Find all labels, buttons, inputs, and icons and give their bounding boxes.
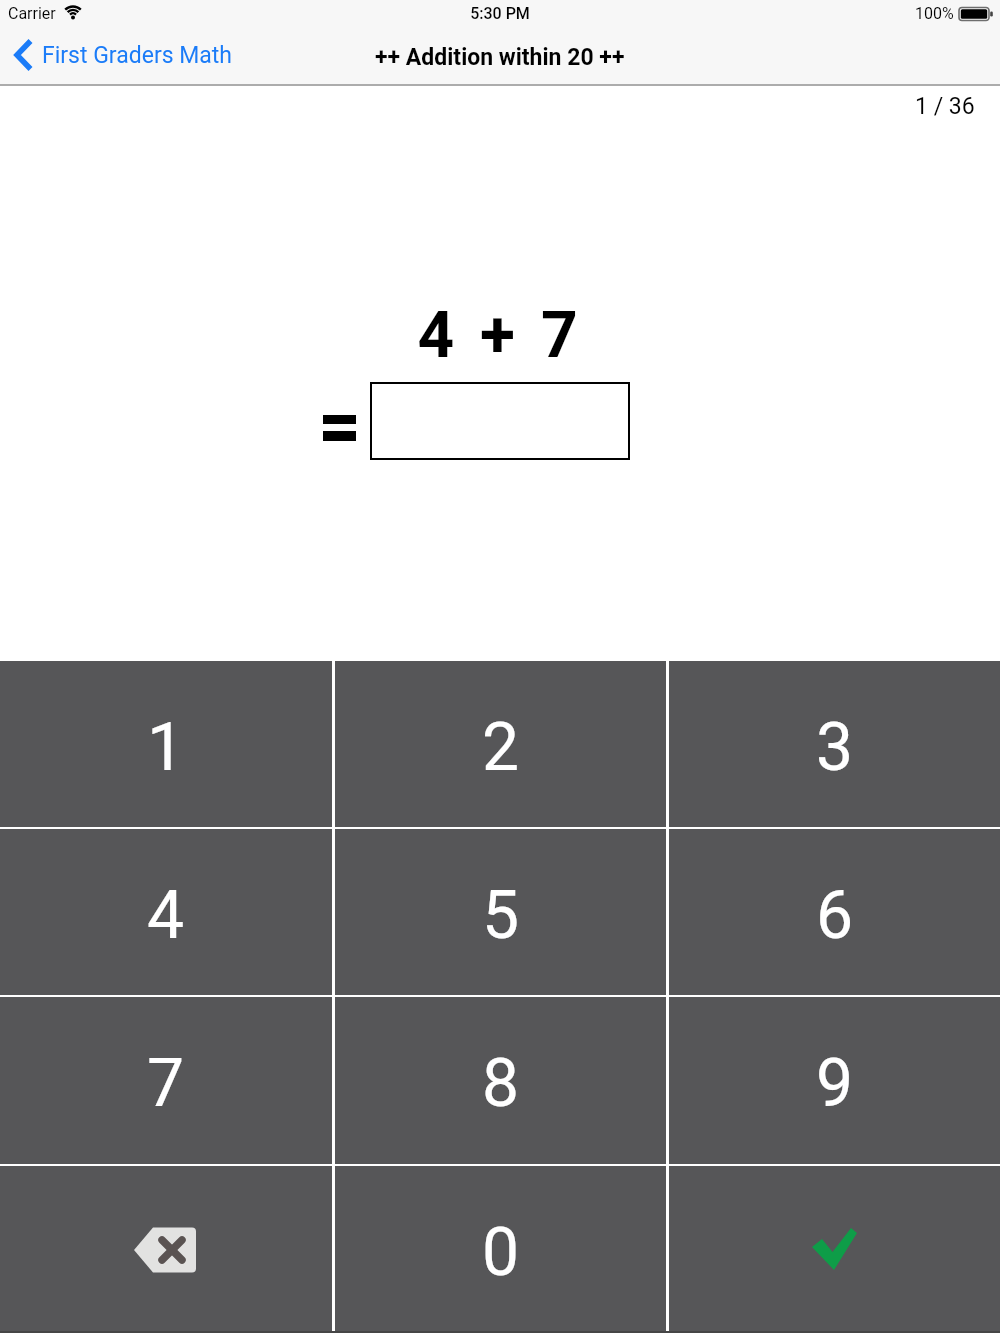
button[interactable]: 0 bbox=[335, 1166, 666, 1333]
button[interactable] bbox=[370, 382, 630, 460]
button[interactable]: 4 bbox=[0, 829, 332, 995]
staticText: Carrier bbox=[8, 4, 56, 23]
staticText: 9 bbox=[816, 1045, 854, 1122]
staticText: 4 + 7 bbox=[0, 298, 1000, 373]
button[interactable]: 5 bbox=[335, 829, 666, 995]
staticText: 8 bbox=[482, 1045, 520, 1122]
staticText: ++ Addition within 20 ++ bbox=[375, 44, 625, 71]
button[interactable]: 9 bbox=[669, 997, 1000, 1164]
staticText: 5:30 PM bbox=[0, 4, 1000, 23]
staticText: 3 bbox=[816, 709, 854, 786]
staticText: 5 bbox=[482, 877, 520, 954]
button[interactable] bbox=[0, 1166, 332, 1333]
button[interactable]: 8 bbox=[335, 997, 666, 1164]
button[interactable]: 2 bbox=[335, 661, 666, 827]
staticText: 2 bbox=[482, 709, 520, 786]
staticText: 0 bbox=[482, 1214, 520, 1291]
button[interactable]: 3 bbox=[669, 661, 1000, 827]
staticText: First Graders Math bbox=[42, 42, 233, 69]
button[interactable] bbox=[669, 1166, 1000, 1333]
staticText: 7 bbox=[147, 1045, 185, 1122]
button[interactable]: 1 bbox=[0, 661, 332, 827]
button[interactable]: 6 bbox=[669, 829, 1000, 995]
button[interactable]: First Graders Math bbox=[13, 36, 233, 74]
staticText: 1 bbox=[147, 709, 185, 786]
staticText: 4 bbox=[147, 877, 185, 954]
staticText: 1 / 36 bbox=[915, 93, 975, 120]
staticText: 6 bbox=[816, 877, 854, 954]
staticText: 100% bbox=[915, 4, 954, 23]
button[interactable]: 7 bbox=[0, 997, 332, 1164]
